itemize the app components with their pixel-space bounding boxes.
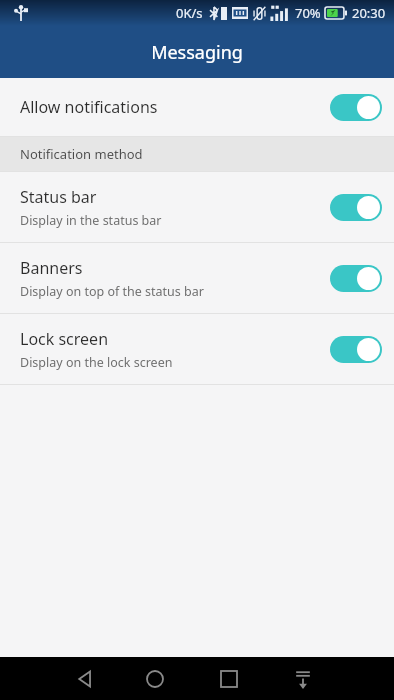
button[interactable]: Toggle xyxy=(330,193,382,221)
staticText: Display on the lock screen xyxy=(20,354,173,371)
button[interactable]: Allow notifications xyxy=(0,78,394,136)
button[interactable]: Home xyxy=(118,657,192,700)
staticText: 20:30 xyxy=(352,4,386,22)
button[interactable]: Back xyxy=(52,657,118,700)
staticText: Display in the status bar xyxy=(20,212,162,229)
button[interactable]: Toggle xyxy=(330,335,382,363)
staticText: Banners xyxy=(20,257,83,279)
button[interactable]: Recent apps xyxy=(192,657,266,700)
staticText: 0K/s xyxy=(176,4,203,22)
button[interactable]: Lock screen xyxy=(0,314,394,384)
button[interactable]: Toggle xyxy=(330,93,382,121)
button[interactable]: Status bar xyxy=(0,172,394,242)
staticText: 70% xyxy=(295,4,321,22)
button[interactable]: Banners xyxy=(0,243,394,313)
staticText: Lock screen xyxy=(20,328,109,350)
button[interactable]: Toggle xyxy=(330,264,382,292)
staticText: Notification method xyxy=(20,145,143,163)
staticText: Status bar xyxy=(20,186,97,208)
staticText: Messaging xyxy=(151,40,243,65)
button[interactable]: Hide navigation bar xyxy=(266,657,340,700)
staticText: Display on top of the status bar xyxy=(20,283,204,300)
staticText: Allow notifications xyxy=(20,96,158,118)
